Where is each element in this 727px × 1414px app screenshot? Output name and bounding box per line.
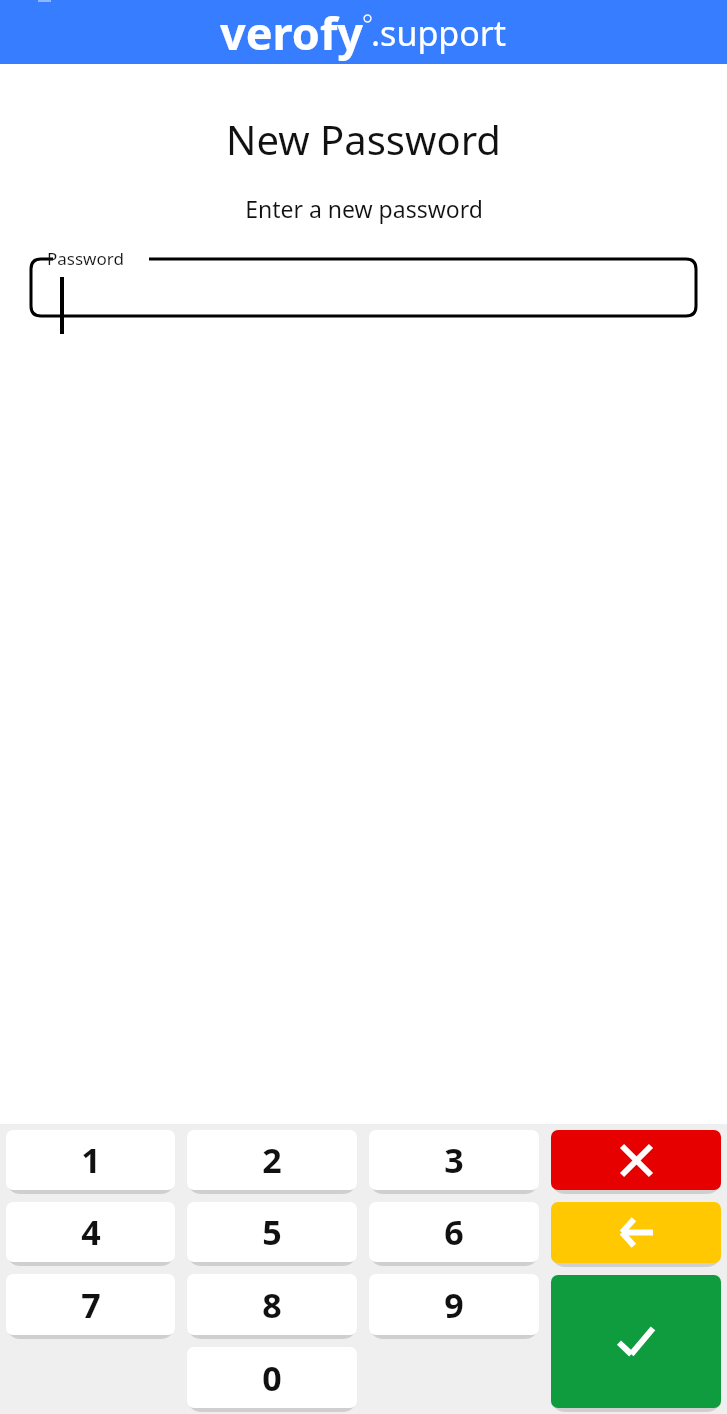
button[interactable]: 6 bbox=[369, 1202, 539, 1262]
button[interactable]: 7 bbox=[6, 1274, 175, 1335]
staticText: .support bbox=[371, 10, 507, 56]
button[interactable]: Backspace bbox=[551, 1202, 721, 1263]
button[interactable]: 9 bbox=[369, 1274, 539, 1335]
staticText: 3 bbox=[444, 1137, 464, 1183]
staticText: verofy bbox=[220, 2, 364, 63]
button[interactable]: 1 bbox=[6, 1130, 175, 1190]
button[interactable]: Cancel bbox=[551, 1130, 721, 1190]
staticText: 9 bbox=[444, 1282, 464, 1328]
staticText: 0 bbox=[262, 1355, 282, 1401]
button[interactable]: 8 bbox=[187, 1274, 357, 1335]
button[interactable]: Password bbox=[31, 251, 696, 316]
staticText: Password bbox=[47, 247, 124, 270]
button[interactable]: 3 bbox=[369, 1130, 539, 1190]
staticText: 5 bbox=[262, 1209, 282, 1255]
staticText: 8 bbox=[262, 1282, 282, 1328]
staticText: 7 bbox=[81, 1282, 101, 1328]
staticText: New Password bbox=[226, 112, 501, 166]
staticText: 6 bbox=[444, 1209, 464, 1255]
button[interactable]: 5 bbox=[187, 1202, 357, 1262]
button[interactable]: Confirm bbox=[551, 1275, 721, 1408]
button[interactable]: 2 bbox=[187, 1130, 357, 1190]
staticText: 4 bbox=[81, 1209, 101, 1255]
staticText: 1 bbox=[81, 1137, 101, 1183]
button[interactable]: 4 bbox=[6, 1202, 175, 1262]
staticText: Enter a new password bbox=[245, 193, 483, 224]
button[interactable]: 0 bbox=[187, 1347, 357, 1408]
staticText: 2 bbox=[262, 1137, 282, 1183]
